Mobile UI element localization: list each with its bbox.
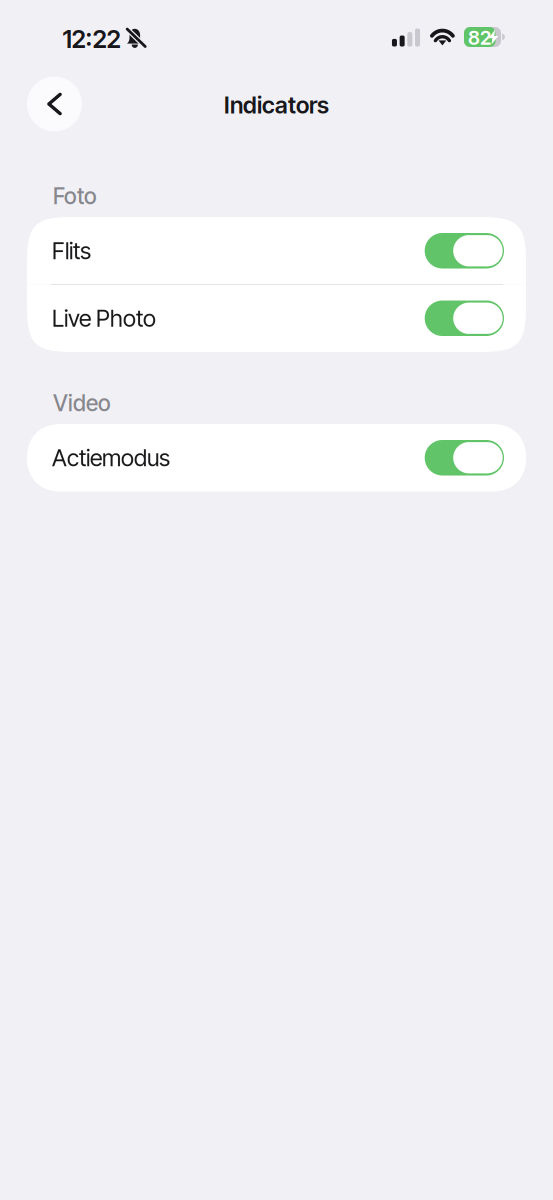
staticText: Live Photo <box>52 304 156 332</box>
staticText: Flits <box>52 237 91 265</box>
staticText: Indicators <box>224 91 329 119</box>
button[interactable]: Actiemodus <box>27 424 526 491</box>
staticText: Actiemodus <box>52 444 170 472</box>
staticText: 82 <box>468 26 491 49</box>
button[interactable]: Live Photo <box>27 284 526 352</box>
button[interactable]: Back <box>27 76 82 131</box>
staticText: Video <box>53 389 111 416</box>
staticText: 12:22 <box>62 24 120 54</box>
button[interactable]: Flits <box>27 217 526 284</box>
staticText: Foto <box>53 182 97 209</box>
